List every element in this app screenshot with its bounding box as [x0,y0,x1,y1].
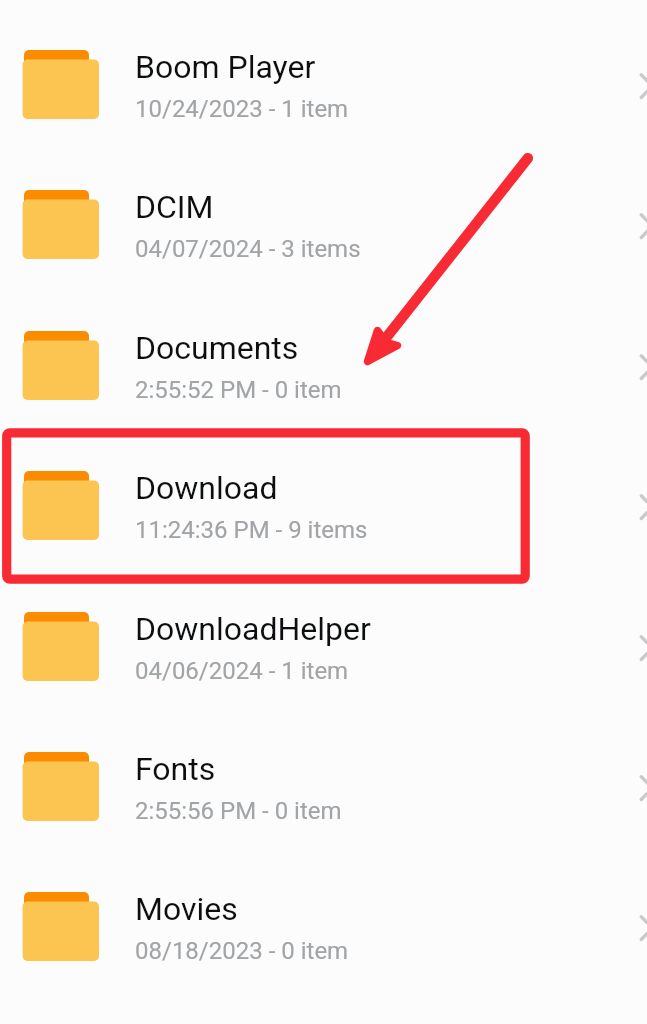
staticText: Movies [135,890,238,928]
button[interactable]: Open DCIM [617,204,647,244]
staticText: Fonts [135,750,216,788]
button[interactable]: Open Movies [617,906,647,946]
button[interactable]: DCIM [0,160,647,300]
button[interactable]: Open Fonts [617,766,647,806]
staticText: 10/24/2023 - 1 item [135,95,349,123]
button[interactable]: Boom Player [0,20,647,160]
staticText: 2:55:56 PM - 0 item [135,797,342,825]
staticText: 08/18/2023 - 0 item [135,937,349,965]
button[interactable]: Documents [0,301,647,441]
button[interactable]: Download [0,441,647,581]
staticText: 11:24:36 PM - 9 items [135,516,368,544]
staticText: 04/07/2024 - 3 items [135,235,361,263]
staticText: DCIM [135,188,214,226]
staticText: DownloadHelper [135,610,371,648]
staticText: 2:55:52 PM - 0 item [135,376,342,404]
staticText: Download [135,469,278,507]
button[interactable]: Movies [0,862,647,1002]
button[interactable]: DownloadHelper [0,582,647,722]
button[interactable]: Open Documents [617,345,647,385]
staticText: 04/06/2024 - 1 item [135,657,349,685]
staticText: Boom Player [135,48,316,86]
button[interactable]: Open Download [617,485,647,525]
staticText: Documents [135,329,299,367]
button[interactable]: Open Boom Player [617,64,647,104]
button[interactable]: Fonts [0,722,647,862]
button[interactable]: Open DownloadHelper [617,626,647,666]
